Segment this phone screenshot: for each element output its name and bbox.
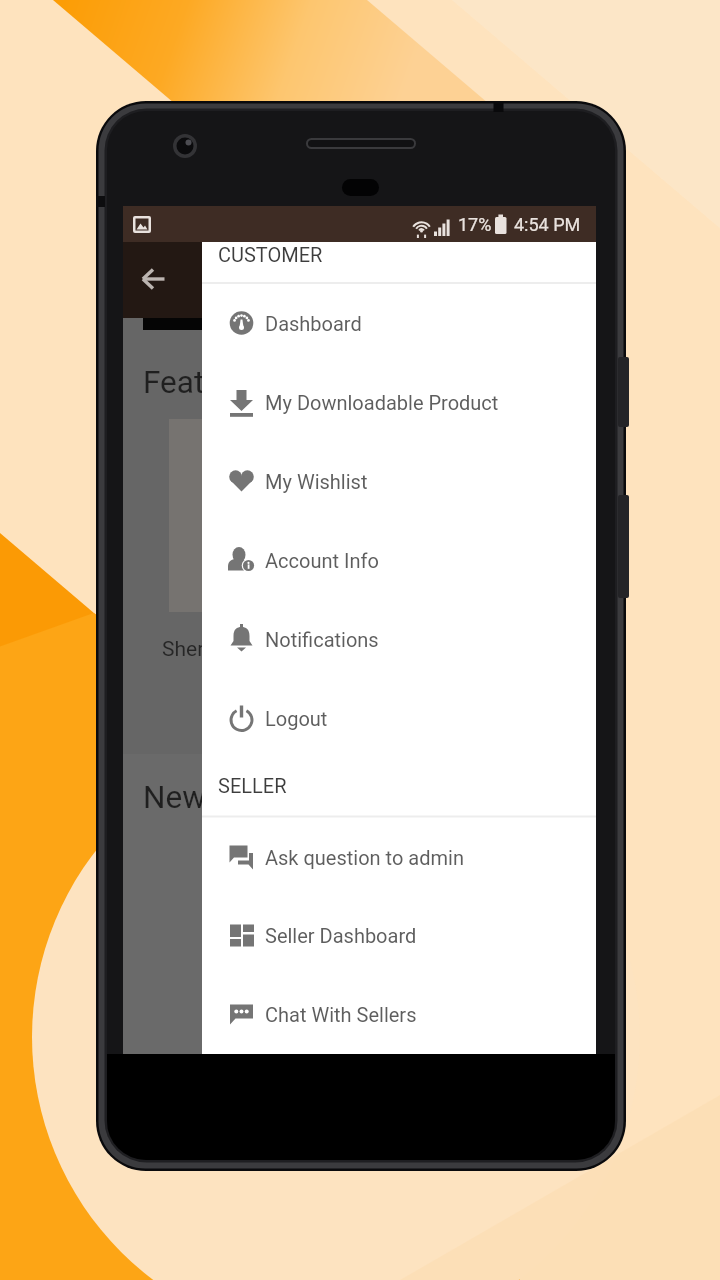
staticText: 17% [458, 214, 492, 235]
staticText: SELLER [218, 774, 287, 797]
staticText: Ask question to admin [265, 846, 464, 869]
staticText: Dashboard [265, 312, 362, 335]
button[interactable]: Ask question to admin [202, 818, 596, 896]
button[interactable]: Chat With Sellers [202, 975, 596, 1053]
staticText: Chat With Sellers [265, 1003, 417, 1026]
button[interactable]: My Downloadable Product [202, 363, 596, 441]
staticText: Sherpa Hoodie [162, 637, 300, 662]
button[interactable]: My Wishlist [202, 442, 596, 520]
staticText: Notifications [265, 628, 379, 651]
staticText: My Downloadable Product [265, 391, 499, 414]
staticText: Featured [143, 364, 267, 401]
staticText: My Wishlist [265, 470, 368, 493]
button[interactable]: Notifications [202, 600, 596, 678]
staticText: Logout [265, 707, 328, 730]
staticText: 4:54 PM [514, 214, 581, 235]
staticText: Account Info [265, 549, 379, 572]
staticText: Seller Dashboard [265, 924, 417, 947]
staticText: CUSTOMER [218, 243, 323, 266]
staticText: New [143, 779, 206, 816]
button[interactable]: Account Info [202, 521, 596, 599]
button[interactable]: Logout [202, 679, 596, 757]
button[interactable]: Dashboard [202, 284, 596, 362]
button[interactable]: Seller Dashboard [202, 896, 596, 974]
